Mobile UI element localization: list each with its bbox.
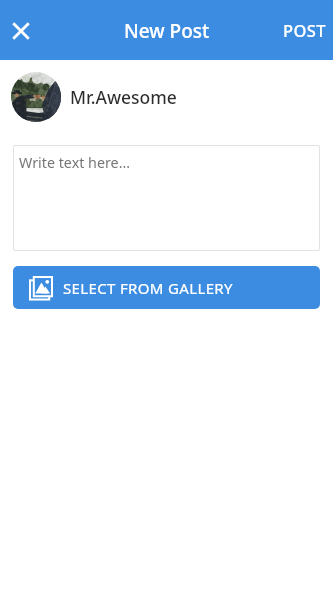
button[interactable]: POST	[274, 11, 333, 49]
staticText: SELECT FROM GALLERY	[63, 278, 233, 298]
staticText: New Post	[124, 18, 210, 44]
staticText: POST	[283, 19, 326, 41]
other: Photo library	[29, 276, 53, 300]
button[interactable]: Photo library	[13, 266, 320, 309]
staticText: Mr.Awesome	[70, 85, 177, 109]
button[interactable]: Write text here...	[13, 145, 320, 251]
staticText: Write text here...	[19, 153, 131, 172]
button[interactable]: Close	[5, 14, 37, 46]
